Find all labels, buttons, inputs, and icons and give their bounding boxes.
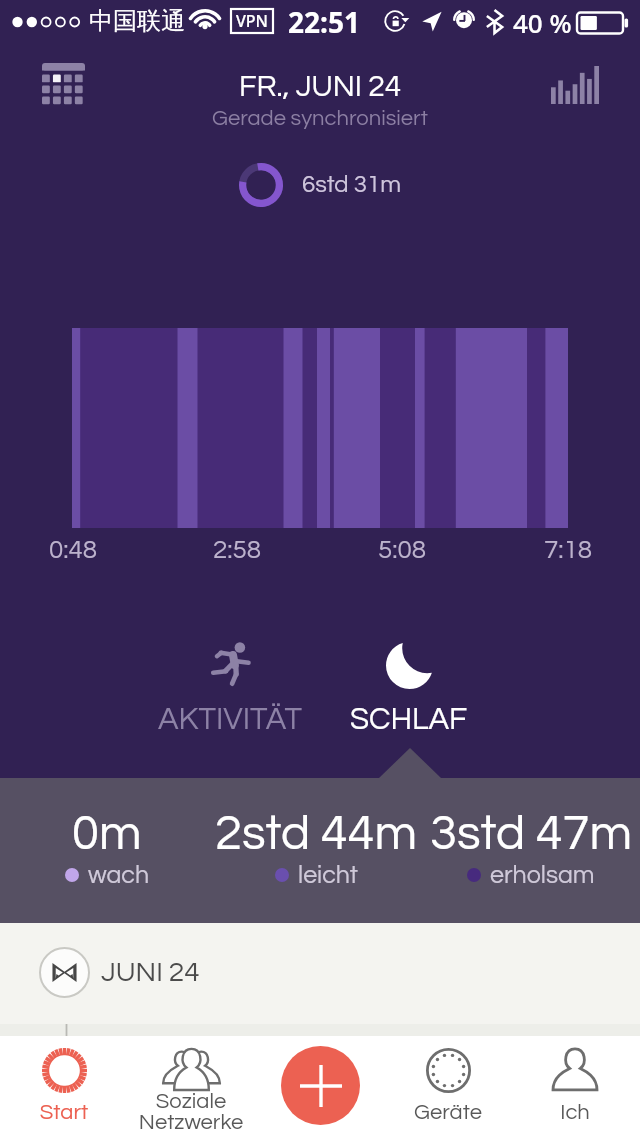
button[interactable]: 2std 44m xyxy=(211,809,421,899)
staticText: Ich xyxy=(511,1101,639,1124)
button[interactable]: AKTIVITÄT xyxy=(130,640,330,750)
staticText: Gerade synchronisiert xyxy=(212,107,428,130)
button[interactable]: Geräte xyxy=(384,1036,512,1136)
staticText: 40 % xyxy=(513,5,572,40)
button[interactable]: Calendar xyxy=(42,63,85,106)
staticText: Start xyxy=(0,1101,128,1124)
staticText: SCHLAF xyxy=(350,704,468,736)
button[interactable]: Trends xyxy=(551,66,599,104)
button[interactable]: Add xyxy=(281,1046,360,1125)
staticText: JUNI 24 xyxy=(101,958,200,987)
staticText: Netzwerke xyxy=(127,1111,255,1134)
staticText: 2std 44m xyxy=(215,809,418,859)
staticText: 2:58 xyxy=(177,537,297,564)
button[interactable]: SCHLAF xyxy=(309,640,509,750)
staticText: FR., JUNI 24 xyxy=(239,71,402,102)
staticText: leicht xyxy=(298,862,358,888)
staticText: AKTIVITÄT xyxy=(158,704,302,736)
staticText: 0m xyxy=(72,809,142,859)
button[interactable]: Ich xyxy=(511,1036,639,1136)
staticText: 6std 31m xyxy=(302,172,401,197)
button[interactable]: JUNI 24 xyxy=(0,936,640,1008)
staticText: wach xyxy=(88,862,150,888)
staticText: 5:08 xyxy=(342,537,462,564)
staticText: VPN xyxy=(236,10,269,32)
staticText: Geräte xyxy=(384,1101,512,1124)
button[interactable]: Soziale xyxy=(127,1036,255,1136)
staticText: 7:18 xyxy=(508,537,628,564)
staticText: 22:51 xyxy=(288,3,360,41)
staticText: Soziale xyxy=(127,1090,255,1113)
staticText: 3std 47m xyxy=(430,809,633,859)
staticText: 0:48 xyxy=(13,537,133,564)
button[interactable]: 0m xyxy=(2,809,212,899)
staticText: 中国联通 xyxy=(89,6,185,36)
staticText: erholsam xyxy=(490,862,595,888)
button[interactable]: 3std 47m xyxy=(426,809,636,899)
button[interactable]: Start xyxy=(0,1036,128,1136)
